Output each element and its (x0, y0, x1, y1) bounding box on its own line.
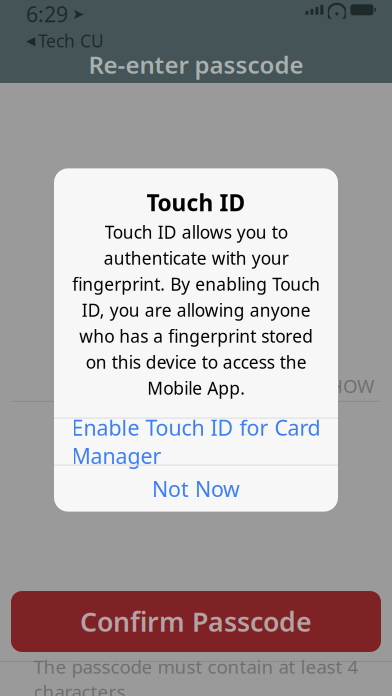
staticText: Touch ID (146, 187, 245, 217)
staticText: The passcode must contain at least 4 cha… (33, 654, 358, 696)
button[interactable]: Enable Touch ID for Card Manager (54, 419, 338, 465)
staticText: Enable Touch ID for Card Manager (71, 413, 320, 470)
staticText: Touch ID allows you to authenticate with… (72, 220, 320, 400)
button[interactable]: Confirm Passcode (11, 591, 381, 652)
button[interactable]: Not Now (54, 466, 338, 512)
staticText: ◀ (26, 34, 35, 47)
staticText: Confirm Passcode (80, 604, 312, 639)
staticText: Tech CU (38, 29, 104, 52)
staticText: Re-enter passcode (88, 49, 303, 80)
staticText: Passcode set. (83, 183, 309, 231)
staticText: Not Now (152, 474, 240, 503)
button[interactable]: Back to Tech CU (26, 29, 104, 52)
staticText: SHOW (319, 373, 374, 398)
button[interactable]: SHOW (319, 373, 374, 398)
staticText: ➤ (72, 6, 84, 22)
staticText: 6:29 (26, 0, 68, 28)
